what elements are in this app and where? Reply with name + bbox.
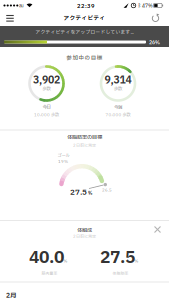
staticText: 歩数 — [42, 86, 50, 92]
staticText: 47% — [142, 2, 153, 10]
button[interactable]: メニュー — [3, 11, 17, 25]
staticText: 27.5 — [70, 187, 87, 198]
staticText: 体脂肪率 — [112, 271, 128, 276]
staticText: 体脂肪率の目標 — [67, 134, 102, 141]
staticText: 10,000 歩数 — [34, 112, 59, 118]
staticText: 22:39 — [77, 2, 95, 10]
staticText: 3,902 — [33, 73, 60, 88]
staticText: 26% — [149, 39, 160, 46]
staticText: 今週 — [114, 104, 122, 111]
staticText: % — [63, 258, 67, 264]
staticText: 今日 — [42, 104, 50, 111]
staticText: 2日前に測定 — [73, 233, 96, 240]
staticText: 19% — [58, 159, 68, 165]
staticText: au — [19, 3, 24, 9]
button[interactable]: 閉じる — [152, 224, 163, 235]
staticText: 70,000 歩数 — [105, 112, 130, 118]
staticText: 9,314 — [104, 73, 131, 88]
staticText: ゴール — [57, 152, 69, 159]
button[interactable]: 更新 — [148, 11, 162, 25]
staticText: 26.5 — [102, 187, 112, 193]
staticText: ᛒ — [138, 3, 141, 8]
button[interactable]: 今週の歩数目標 — [81, 46, 155, 120]
staticText: 参加中の目標 — [66, 54, 102, 62]
staticText: 2日前に測定 — [73, 142, 96, 149]
staticText: 27.5 — [100, 245, 135, 270]
button[interactable]: 今日の歩数目標 — [9, 46, 83, 120]
staticText: 筋肉量率 — [41, 271, 57, 276]
staticText: アクティビティをアップロードしています... — [35, 29, 133, 36]
staticText: 2月 — [6, 291, 16, 300]
staticText: 歩数 — [114, 86, 122, 92]
staticText: % — [88, 190, 92, 197]
staticText: アクティビティ — [63, 14, 105, 22]
staticText: 体組成 — [77, 227, 92, 234]
staticText: 40.0 — [29, 245, 64, 270]
staticText: % — [134, 258, 138, 264]
